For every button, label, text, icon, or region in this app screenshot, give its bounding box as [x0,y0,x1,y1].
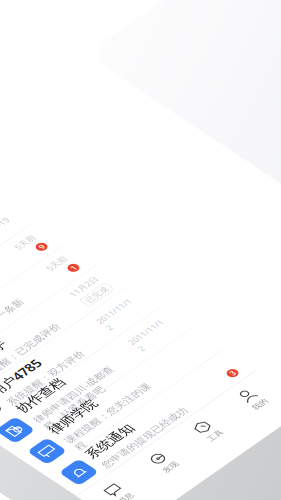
staticText: 系统提醒：双方评价 [5,332,176,355]
button[interactable]: 律师学院 [0,431,281,500]
button[interactable]: 协作查档 [0,359,281,431]
staticText: 系统提醒：已完成评价 [5,259,195,281]
button[interactable]: 订单助手 [0,215,281,287]
staticText: 律师学院 [5,424,105,455]
staticText: 协作查档 [5,351,105,382]
button[interactable]: 订单助手 [0,71,281,143]
staticText: 课程提醒：您关注的课程 [5,463,195,500]
staticText: 律师申请四川-成都查档，赶紧看看吧 [5,390,182,438]
button[interactable]: 用户4785 [0,287,281,359]
staticText: 2011/11/12 [242,373,281,416]
staticText: 订单助手 [5,219,105,251]
staticText: 用户4785 [5,290,111,324]
